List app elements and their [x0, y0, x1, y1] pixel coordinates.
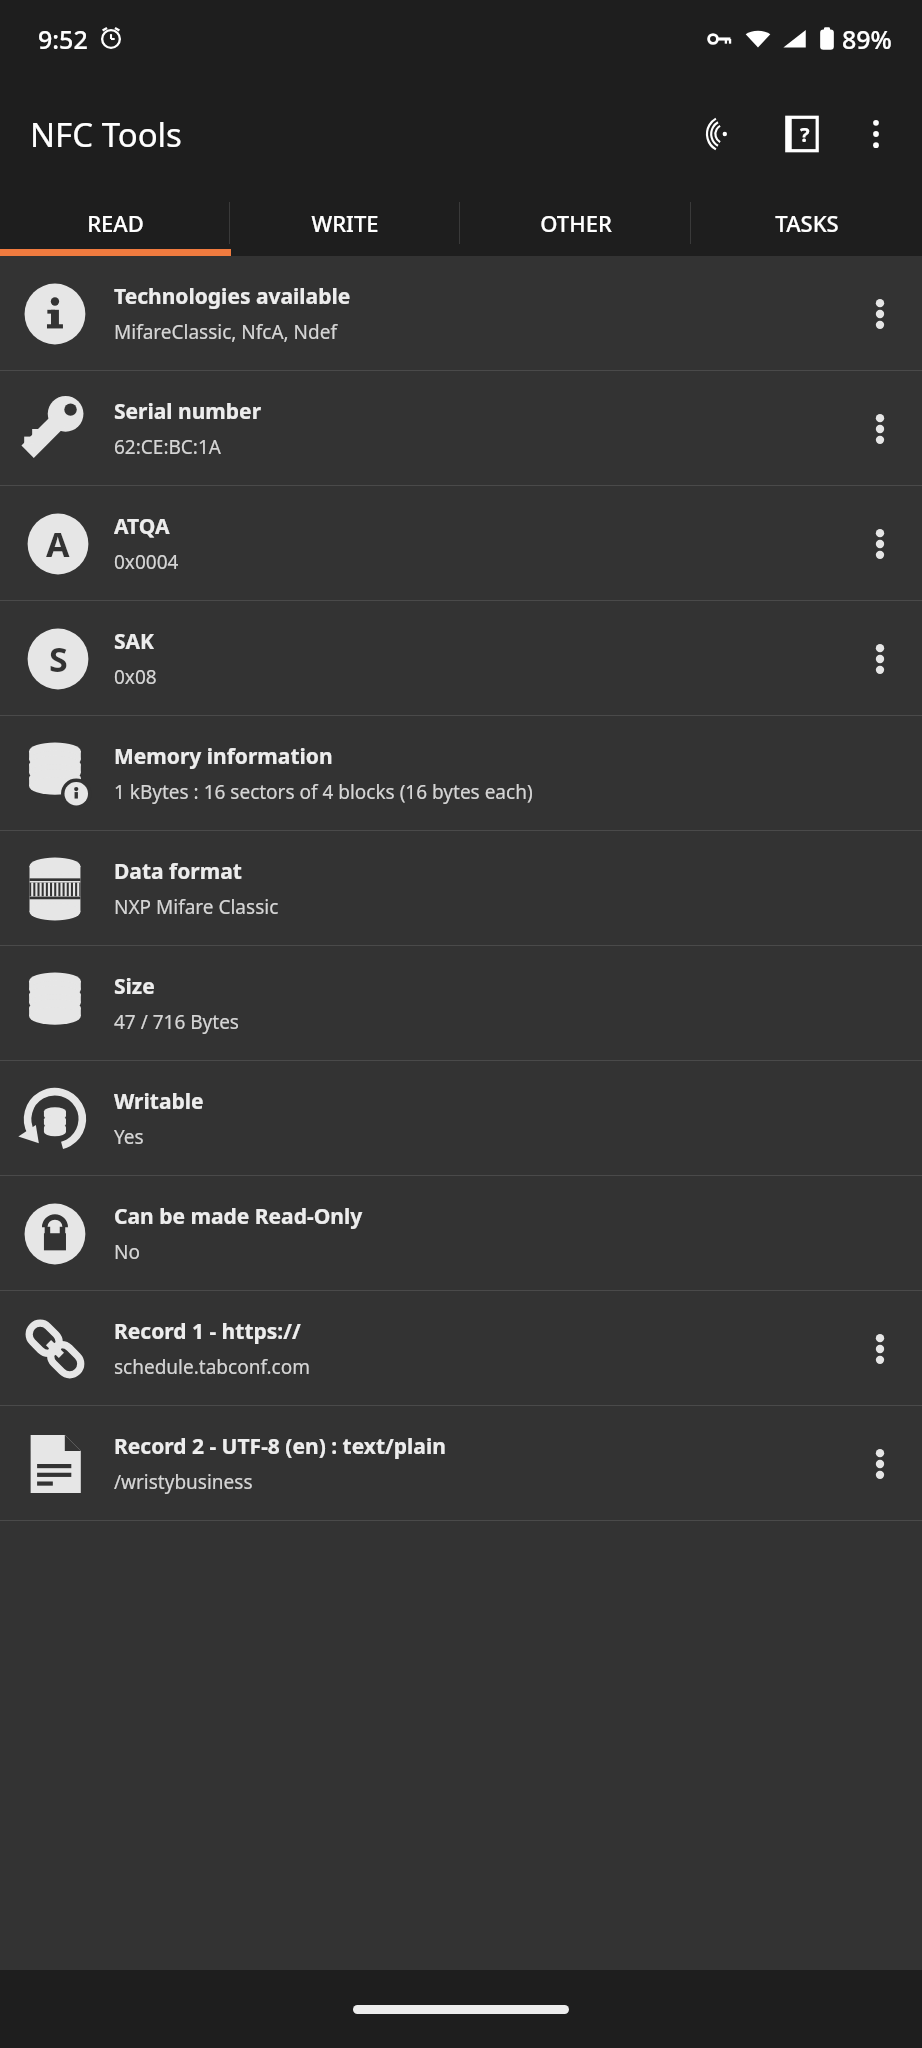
button[interactable]: WRITE	[230, 190, 460, 256]
button[interactable]: More options for ATQA	[852, 516, 908, 572]
button[interactable]: OTHER	[460, 190, 691, 256]
staticText: Memory information	[114, 742, 333, 771]
button[interactable]: More options for Serial number	[852, 401, 908, 457]
staticText: 9:52	[38, 22, 88, 56]
button[interactable]: More options for Record 2 - UTF-8 (en) :…	[852, 1436, 908, 1492]
staticText: Serial number	[114, 397, 262, 426]
button[interactable]: Help	[770, 102, 834, 166]
staticText: /wristybusiness	[114, 1469, 253, 1495]
staticText: ?	[800, 121, 810, 148]
staticText: 62:CE:BC:1A	[114, 434, 221, 460]
staticText: Yes	[114, 1124, 144, 1150]
staticText: WRITE	[311, 208, 379, 238]
staticText: No	[114, 1239, 140, 1265]
button[interactable]: Writable	[0, 1061, 922, 1176]
staticText: Size	[114, 972, 155, 1001]
staticText: READ	[87, 208, 144, 238]
button[interactable]: TASKS	[691, 190, 922, 256]
staticText: MifareClassic, NfcA, Ndef	[114, 319, 337, 345]
staticText: 0x0004	[114, 549, 179, 575]
staticText: schedule.tabconf.com	[114, 1354, 311, 1380]
button[interactable]: Size	[0, 946, 922, 1061]
staticText: 47 / 716 Bytes	[114, 1009, 239, 1035]
staticText: 1 kBytes : 16 sectors of 4 blocks (16 by…	[114, 779, 533, 805]
staticText: NFC Tools	[30, 112, 182, 157]
staticText: ATQA	[114, 512, 170, 541]
staticText: 89%	[842, 22, 892, 56]
staticText: Can be made Read-Only	[114, 1202, 363, 1231]
button[interactable]: Can be made Read-Only	[0, 1176, 922, 1291]
button[interactable]: Data format	[0, 831, 922, 946]
button[interactable]: Serial number	[0, 371, 922, 486]
staticText: A	[46, 521, 70, 567]
button[interactable]: S	[0, 601, 922, 716]
staticText: S	[49, 636, 68, 682]
button[interactable]: More options for Record 1 - https://	[852, 1321, 908, 1377]
staticText: OTHER	[540, 208, 612, 238]
button[interactable]: READ	[0, 190, 230, 256]
staticText: Record 1 - https://	[114, 1317, 301, 1346]
button[interactable]: NFC	[688, 102, 752, 166]
button[interactable]: A	[0, 486, 922, 601]
button[interactable]: Memory information	[0, 716, 922, 831]
staticText: Data format	[114, 857, 242, 886]
staticText: Technologies available	[114, 282, 351, 311]
button[interactable]: More options for Technologies available	[852, 286, 908, 342]
button[interactable]: Technologies available	[0, 256, 922, 371]
staticText: Record 2 - UTF-8 (en) : text/plain	[114, 1432, 446, 1461]
staticText: 0x08	[114, 664, 157, 690]
staticText: Writable	[114, 1087, 204, 1116]
staticText: SAK	[114, 627, 155, 656]
button[interactable]: More options	[844, 102, 908, 166]
button[interactable]: More options for SAK	[852, 631, 908, 687]
staticText: TASKS	[775, 208, 839, 238]
button[interactable]: Record 1 - https://	[0, 1291, 922, 1406]
button[interactable]: Record 2 - UTF-8 (en) : text/plain	[0, 1406, 922, 1521]
staticText: NXP Mifare Classic	[114, 894, 279, 920]
